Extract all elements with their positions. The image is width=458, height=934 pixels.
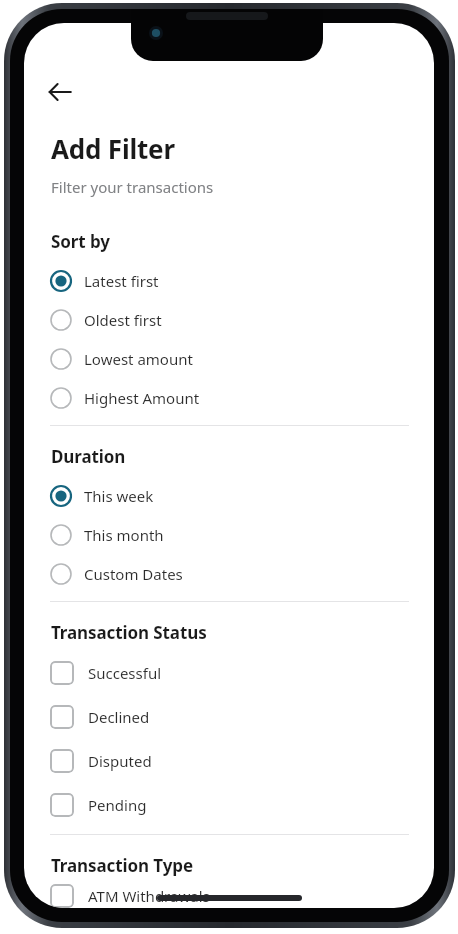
staticText: Sort by (51, 230, 110, 253)
staticText: Lowest amount (84, 349, 193, 369)
button[interactable]: Lowest amount (24, 339, 434, 378)
staticText: Latest first (84, 271, 159, 291)
button[interactable]: Disputed (24, 739, 434, 783)
staticText: Filter your transactions (51, 177, 214, 197)
staticText: Duration (51, 445, 126, 468)
staticText: Disputed (88, 751, 152, 771)
staticText: Transaction Status (51, 621, 207, 644)
button[interactable]: Oldest first (24, 300, 434, 339)
staticText: Highest Amount (84, 388, 200, 408)
staticText: Transaction Type (51, 854, 193, 877)
staticText: This month (84, 525, 164, 545)
button[interactable]: ATM Withdrawals (24, 884, 434, 908)
staticText: This week (84, 486, 154, 506)
staticText: Declined (88, 707, 150, 727)
button[interactable]: Successful (24, 651, 434, 695)
button[interactable]: Highest Amount (24, 378, 434, 417)
button[interactable]: This month (24, 515, 434, 554)
button[interactable]: Latest first (24, 261, 434, 300)
button[interactable]: Back (40, 72, 80, 112)
staticText: ATM Withdrawals (88, 886, 210, 906)
button[interactable]: This week (24, 476, 434, 515)
staticText: Successful (88, 663, 162, 683)
button[interactable]: Declined (24, 695, 434, 739)
button[interactable]: Pending (24, 783, 434, 827)
staticText: Pending (88, 795, 147, 815)
staticText: Add Filter (51, 131, 175, 166)
staticText: Custom Dates (84, 564, 183, 584)
button[interactable]: Custom Dates (24, 554, 434, 593)
staticText: Oldest first (84, 310, 162, 330)
